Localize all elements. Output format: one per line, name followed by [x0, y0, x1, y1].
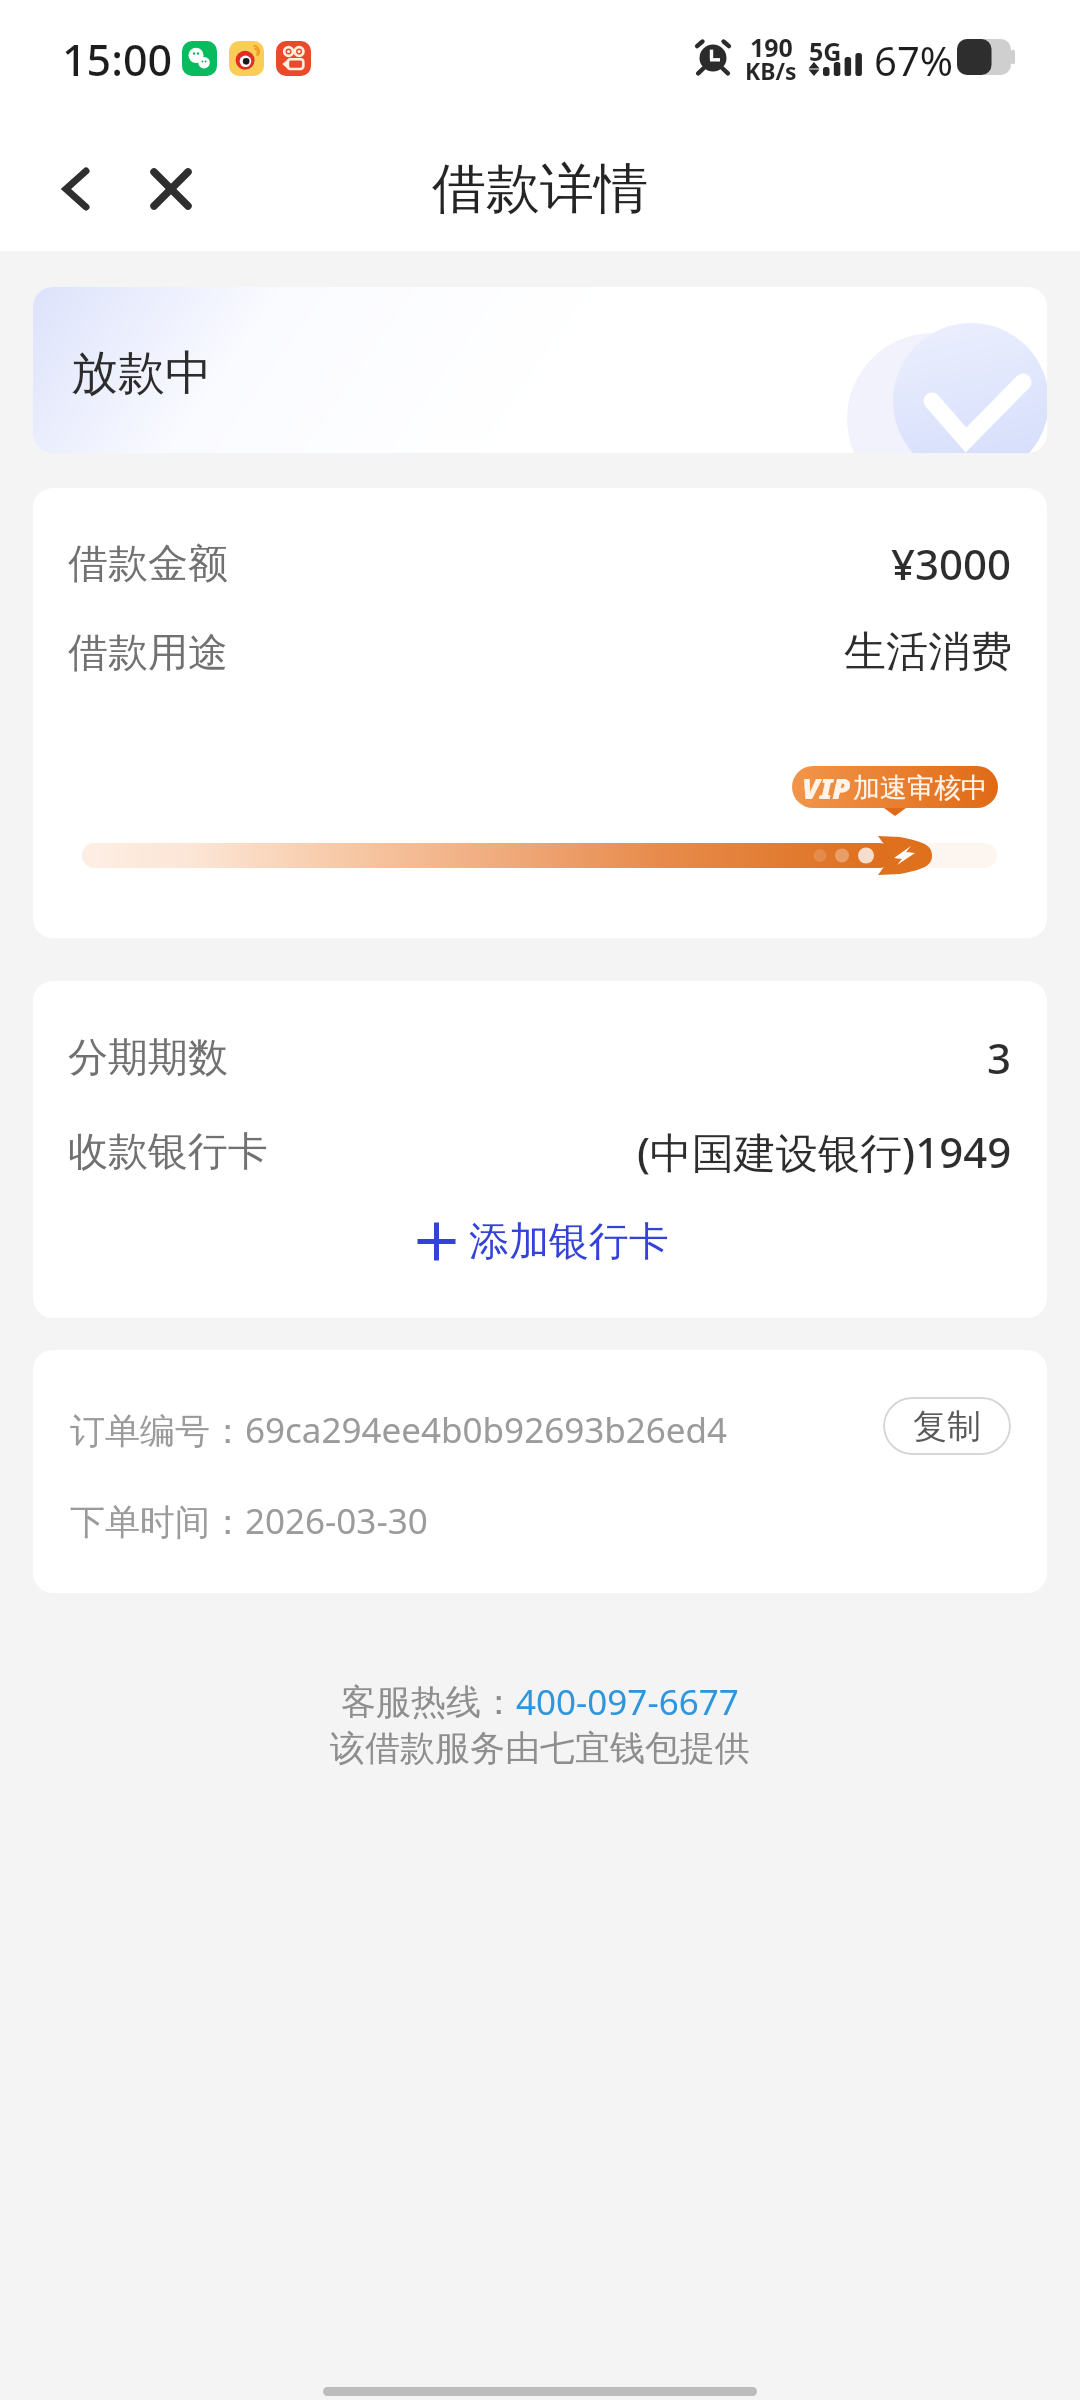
staticText: (中国建设银行)1949 [637, 1123, 1012, 1180]
staticText: 借款用途 [68, 627, 228, 677]
button[interactable]: Close [121, 139, 221, 239]
staticText: 加速审核中 [853, 771, 988, 805]
staticText: 15:00 [62, 30, 173, 89]
staticText: 下单时间：2026-03-30 [70, 1497, 428, 1545]
staticText: 分期期数 [68, 1032, 228, 1082]
staticText: 订单编号：69ca294ee4b0b92693b26ed4 [70, 1406, 728, 1454]
staticText: 67% [874, 33, 953, 87]
staticText: KB/s [745, 55, 797, 86]
staticText: 借款详情 [432, 155, 648, 223]
button[interactable]: 放款中 [33, 287, 1047, 453]
staticText: 添加银行卡 [469, 1216, 669, 1266]
button[interactable]: 添加银行卡 [408, 1210, 681, 1272]
staticText: ¥3000 [891, 535, 1012, 592]
staticText: 收款银行卡 [68, 1126, 268, 1176]
staticText: 生活消费 [844, 626, 1012, 679]
button[interactable]: Back [26, 139, 126, 239]
staticText: 3 [987, 1029, 1012, 1086]
button[interactable]: 复制 [883, 1397, 1011, 1455]
staticText: 5G [809, 34, 842, 68]
staticText: 放款中 [71, 344, 212, 403]
staticText: 该借款服务由七宜钱包提供 [330, 1726, 750, 1770]
button[interactable]: 400-097-6677 [516, 1678, 739, 1726]
staticText: 复制 [913, 1405, 981, 1448]
staticText: VIP [802, 768, 851, 807]
staticText: 借款金额 [68, 538, 228, 588]
staticText: 190 [750, 30, 793, 64]
staticText: 客服热线： [341, 1680, 516, 1724]
